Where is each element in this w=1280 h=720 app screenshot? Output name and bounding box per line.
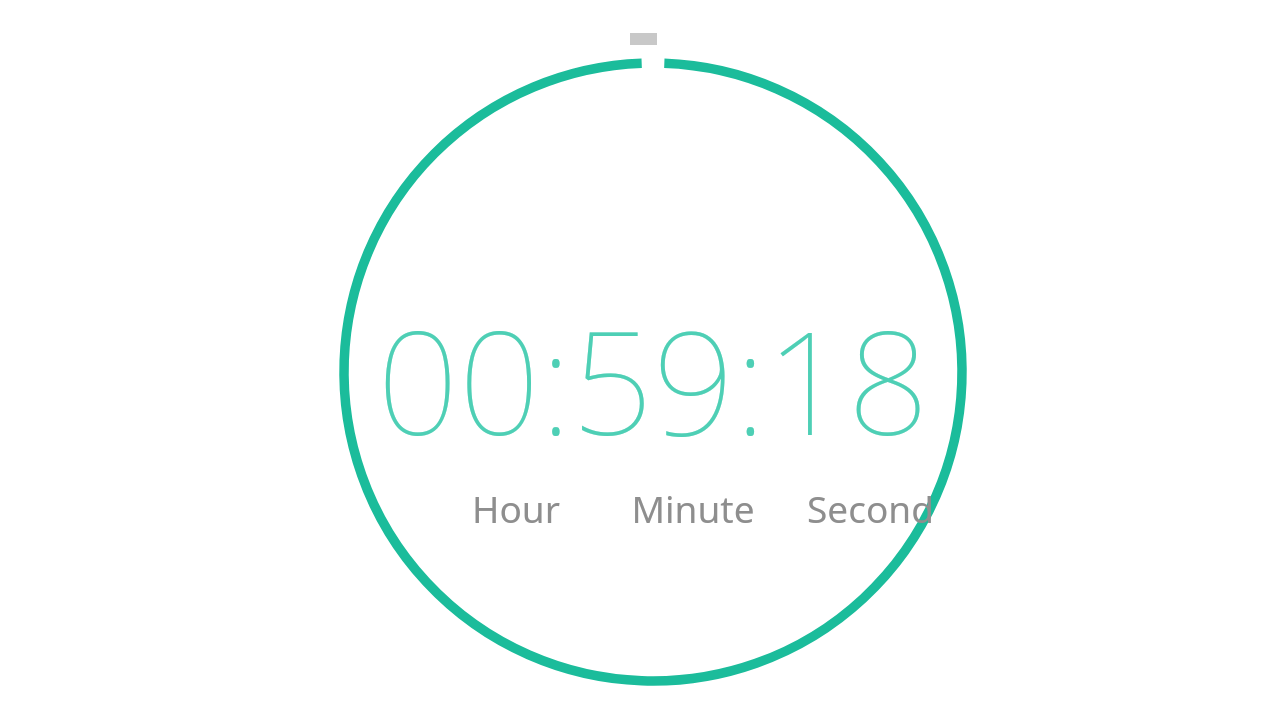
button[interactable]: Hour [441, 483, 591, 531]
button[interactable]: Second [795, 483, 945, 531]
staticText: 00:59:18 [377, 282, 929, 477]
button[interactable]: Minute [618, 483, 768, 531]
staticText: Minute [631, 483, 755, 531]
button[interactable]: Timer dial 00:59:18 [333, 36, 973, 696]
staticText: Hour [472, 483, 560, 531]
staticText: Second [807, 483, 934, 531]
